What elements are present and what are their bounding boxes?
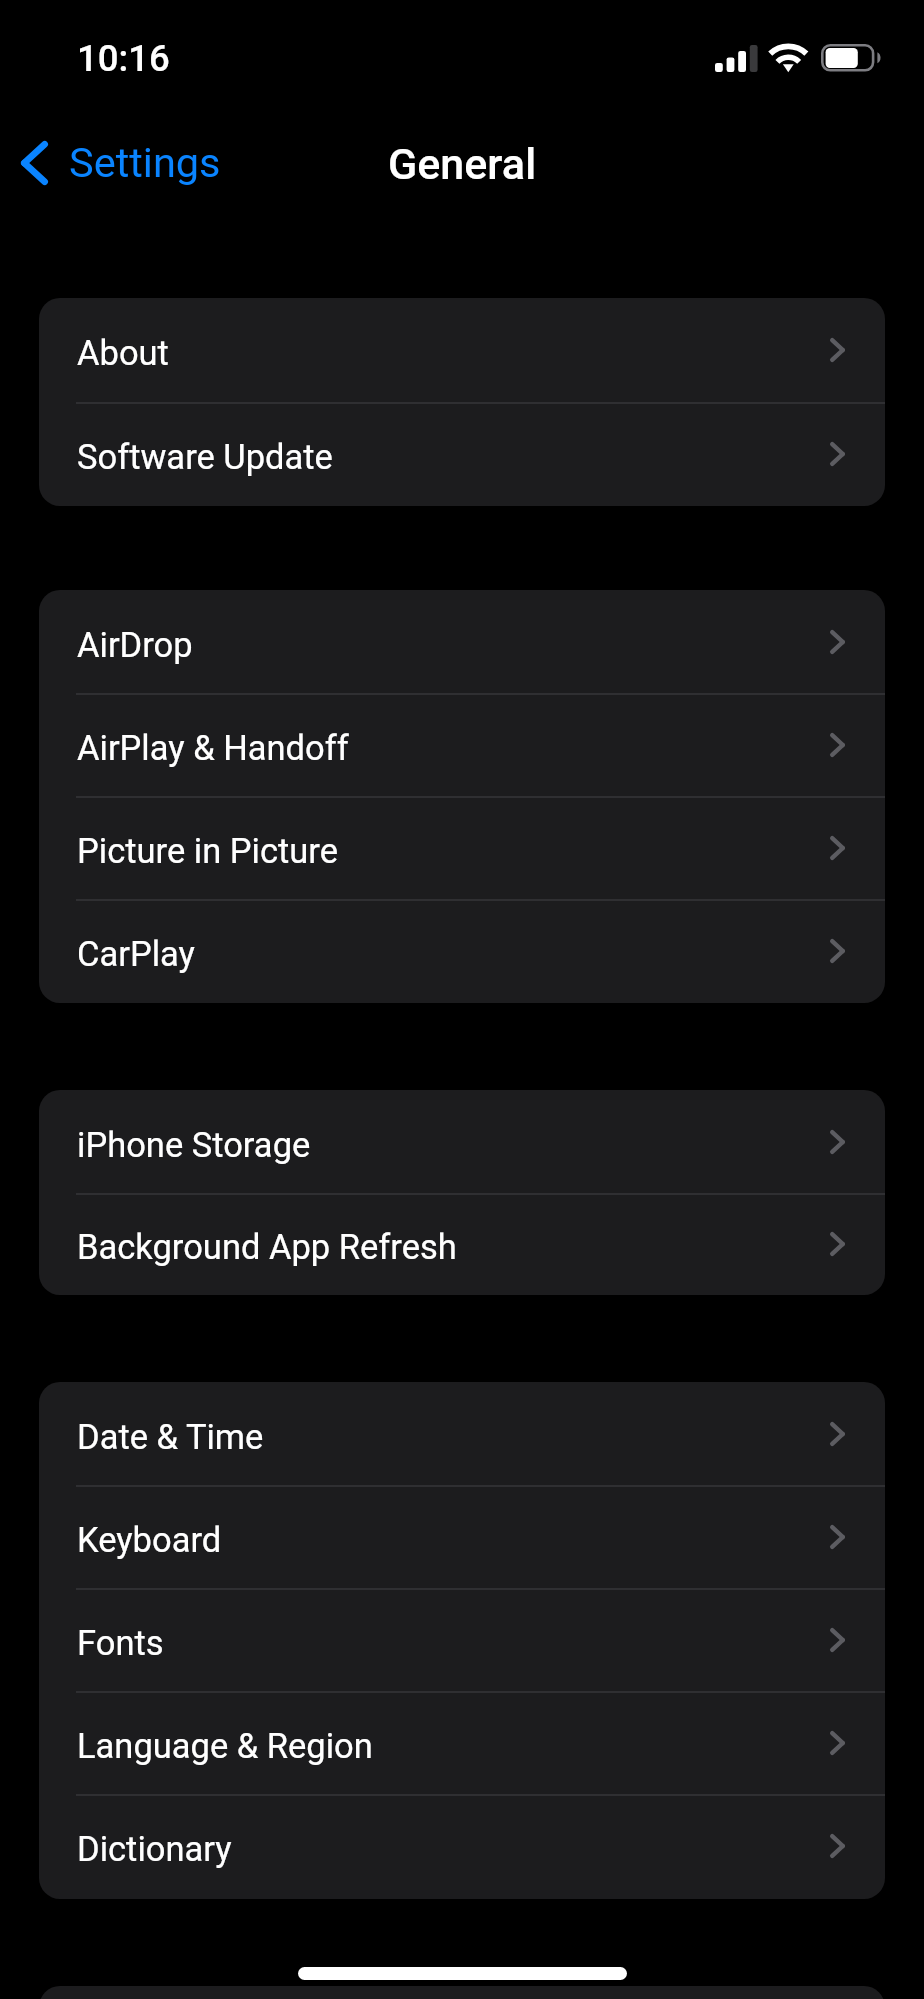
- staticText: Fonts: [77, 1623, 164, 1663]
- button[interactable]: About: [39, 298, 885, 402]
- button[interactable]: Back to Settings: [0, 128, 235, 197]
- staticText: General: [388, 139, 537, 189]
- button[interactable]: Dictionary: [39, 1794, 885, 1897]
- button[interactable]: AirPlay & Handoff: [39, 693, 885, 796]
- button[interactable]: Date & Time: [39, 1382, 885, 1485]
- button[interactable]: AirDrop: [39, 590, 885, 693]
- other: Cellular signal strength: [715, 45, 757, 72]
- staticText: Background App Refresh: [77, 1227, 457, 1267]
- button[interactable]: Background App Refresh: [39, 1193, 885, 1295]
- button[interactable]: Picture in Picture: [39, 796, 885, 899]
- staticText: CarPlay: [77, 934, 195, 974]
- staticText: AirDrop: [77, 625, 193, 665]
- staticText: Picture in Picture: [77, 831, 338, 871]
- button[interactable]: Language & Region: [39, 1691, 885, 1794]
- button[interactable]: Fonts: [39, 1588, 885, 1691]
- staticText: Keyboard: [77, 1520, 222, 1560]
- staticText: Settings: [69, 138, 221, 187]
- staticText: Dictionary: [77, 1829, 232, 1869]
- button[interactable]: Software Update: [39, 402, 885, 506]
- button[interactable]: Keyboard: [39, 1485, 885, 1588]
- staticText: 10:16: [77, 37, 170, 80]
- other: Wi-Fi connected: [766, 41, 811, 74]
- button[interactable]: iPhone Storage: [39, 1090, 885, 1193]
- button[interactable]: VPN & Device Management: [39, 1986, 885, 1999]
- other: Battery 60 percent: [821, 44, 883, 74]
- staticText: About: [77, 333, 169, 373]
- button[interactable]: CarPlay: [39, 899, 885, 1002]
- staticText: AirPlay & Handoff: [77, 728, 349, 768]
- staticText: iPhone Storage: [77, 1125, 311, 1165]
- staticText: Language & Region: [77, 1726, 373, 1766]
- staticText: Date & Time: [77, 1417, 264, 1457]
- staticText: Software Update: [77, 437, 333, 477]
